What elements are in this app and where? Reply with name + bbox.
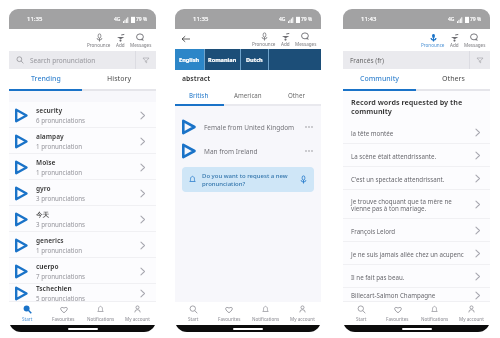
staticText: Tschechien bbox=[36, 284, 72, 293]
staticText: Favourites bbox=[218, 316, 241, 322]
button[interactable]: Romanian bbox=[205, 49, 240, 70]
button[interactable]: François Lelord bbox=[343, 219, 490, 242]
button[interactable]: Community bbox=[343, 69, 416, 89]
button[interactable]: Messages bbox=[294, 32, 317, 47]
button[interactable]: Search pronunciation bbox=[9, 51, 135, 69]
staticText: abstract bbox=[182, 74, 211, 83]
button[interactable]: Billecart-Salmon Champagne bbox=[343, 288, 490, 302]
button[interactable]: Messages bbox=[129, 33, 152, 48]
button[interactable]: History bbox=[82, 69, 156, 89]
button[interactable]: generics bbox=[9, 232, 156, 258]
staticText: gyro bbox=[36, 184, 51, 193]
button[interactable]: Je ne suis jamais allée chez un acupenc bbox=[343, 242, 490, 265]
staticText: My account bbox=[459, 316, 484, 322]
staticText: Pronounce bbox=[87, 42, 111, 48]
staticText: la tête montée bbox=[351, 129, 472, 137]
button[interactable]: Francés (fr) bbox=[343, 51, 469, 69]
button[interactable]: Filter bbox=[470, 51, 490, 69]
staticText: 4G bbox=[114, 16, 121, 23]
button[interactable]: Moïse bbox=[9, 154, 156, 180]
button[interactable]: Favourites bbox=[211, 302, 247, 325]
button[interactable]: Add bbox=[445, 33, 463, 48]
staticText: American bbox=[234, 91, 262, 99]
staticText: Messages bbox=[130, 42, 152, 48]
button[interactable]: More options bbox=[304, 148, 314, 154]
staticText: 3 pronunciations bbox=[36, 194, 85, 202]
staticText: 6 pronunciations bbox=[36, 116, 85, 124]
staticText: 3 pronunciations bbox=[36, 220, 85, 228]
staticText: Il ne fait pas beau. bbox=[351, 273, 472, 281]
staticText: Pronounce bbox=[252, 41, 276, 47]
button[interactable]: My account bbox=[453, 302, 490, 325]
button[interactable]: My account bbox=[284, 302, 321, 325]
staticText: 4G bbox=[279, 16, 286, 23]
button[interactable]: la tête montée bbox=[343, 121, 490, 144]
button[interactable]: Notifications bbox=[247, 302, 284, 325]
staticText: 11:43 bbox=[361, 15, 377, 23]
button[interactable]: Add bbox=[276, 32, 294, 47]
button[interactable]: Pronounce bbox=[87, 33, 111, 48]
staticText: Add bbox=[450, 42, 459, 48]
button[interactable]: Start bbox=[9, 302, 45, 325]
staticText: Female from United Kingdom bbox=[204, 123, 295, 132]
button[interactable]: Notifications bbox=[416, 302, 453, 325]
staticText: C'est un spectacle attendrissant. bbox=[351, 175, 472, 183]
button[interactable]: Dutch bbox=[241, 49, 268, 70]
button[interactable]: My account bbox=[119, 302, 156, 325]
button[interactable]: Start bbox=[175, 302, 211, 325]
staticText: Notifications bbox=[252, 316, 280, 322]
button[interactable]: gyro bbox=[9, 180, 156, 206]
staticText: Francés (fr) bbox=[350, 56, 385, 65]
staticText: security bbox=[36, 106, 63, 115]
button[interactable]: cuerpo bbox=[9, 258, 156, 284]
staticText: Pronounce bbox=[421, 42, 445, 48]
button[interactable]: American bbox=[223, 86, 272, 104]
staticText: Favourites bbox=[52, 316, 75, 322]
staticText: 11:35 bbox=[27, 15, 43, 23]
staticText: Start bbox=[188, 316, 199, 322]
staticText: Messages bbox=[295, 41, 317, 47]
button[interactable]: Je trouve choquant que ta mère ne vienne… bbox=[343, 190, 490, 219]
staticText: 11:35 bbox=[193, 15, 209, 23]
button[interactable]: Notifications bbox=[82, 302, 119, 325]
button[interactable]: C'est un spectacle attendrissant. bbox=[343, 167, 490, 190]
button[interactable]: security bbox=[9, 102, 156, 128]
staticText: cuerpo bbox=[36, 262, 59, 271]
button[interactable]: Others bbox=[416, 69, 490, 89]
button[interactable]: Start bbox=[343, 302, 379, 325]
button[interactable]: Other bbox=[272, 86, 321, 104]
staticText: Man from Ireland bbox=[204, 147, 258, 156]
button[interactable]: Man from Ireland bbox=[175, 139, 321, 163]
button[interactable]: Back bbox=[179, 32, 193, 46]
staticText: History bbox=[107, 74, 132, 84]
button[interactable]: Tschechien bbox=[9, 284, 156, 302]
staticText: 5 pronunciations bbox=[36, 294, 85, 302]
staticText: Do you want to request a new pronunciati… bbox=[202, 172, 295, 188]
staticText: Dutch bbox=[246, 56, 263, 64]
staticText: Start bbox=[356, 316, 367, 322]
staticText: La scène était attendrissante. bbox=[351, 152, 472, 160]
staticText: Others bbox=[442, 74, 465, 84]
staticText: Community bbox=[360, 74, 400, 84]
button[interactable]: Trending bbox=[9, 69, 82, 89]
button[interactable]: Favourites bbox=[45, 302, 82, 325]
button[interactable]: Pronounce bbox=[252, 32, 276, 47]
button[interactable]: Filter bbox=[136, 51, 156, 69]
button[interactable]: Il ne fait pas beau. bbox=[343, 265, 490, 288]
button[interactable]: Do you want to request a new pronunciati… bbox=[182, 167, 314, 192]
button[interactable]: Pronounce bbox=[421, 33, 445, 48]
button[interactable]: alampay bbox=[9, 128, 156, 154]
button[interactable]: Messages bbox=[463, 33, 486, 48]
button[interactable]: English bbox=[175, 49, 204, 70]
button[interactable]: Favourites bbox=[379, 302, 416, 325]
staticText: Notifications bbox=[87, 316, 115, 322]
button[interactable]: Female from United Kingdom bbox=[175, 115, 321, 139]
staticText: Romanian bbox=[208, 56, 237, 64]
button[interactable]: More options bbox=[304, 124, 314, 130]
button[interactable]: British bbox=[175, 86, 223, 104]
staticText: 1 pronunciation bbox=[36, 168, 83, 176]
button[interactable]: 今天 bbox=[9, 206, 156, 232]
button[interactable]: Add bbox=[111, 33, 129, 48]
staticText: 4G bbox=[448, 16, 455, 23]
button[interactable]: La scène était attendrissante. bbox=[343, 144, 490, 167]
